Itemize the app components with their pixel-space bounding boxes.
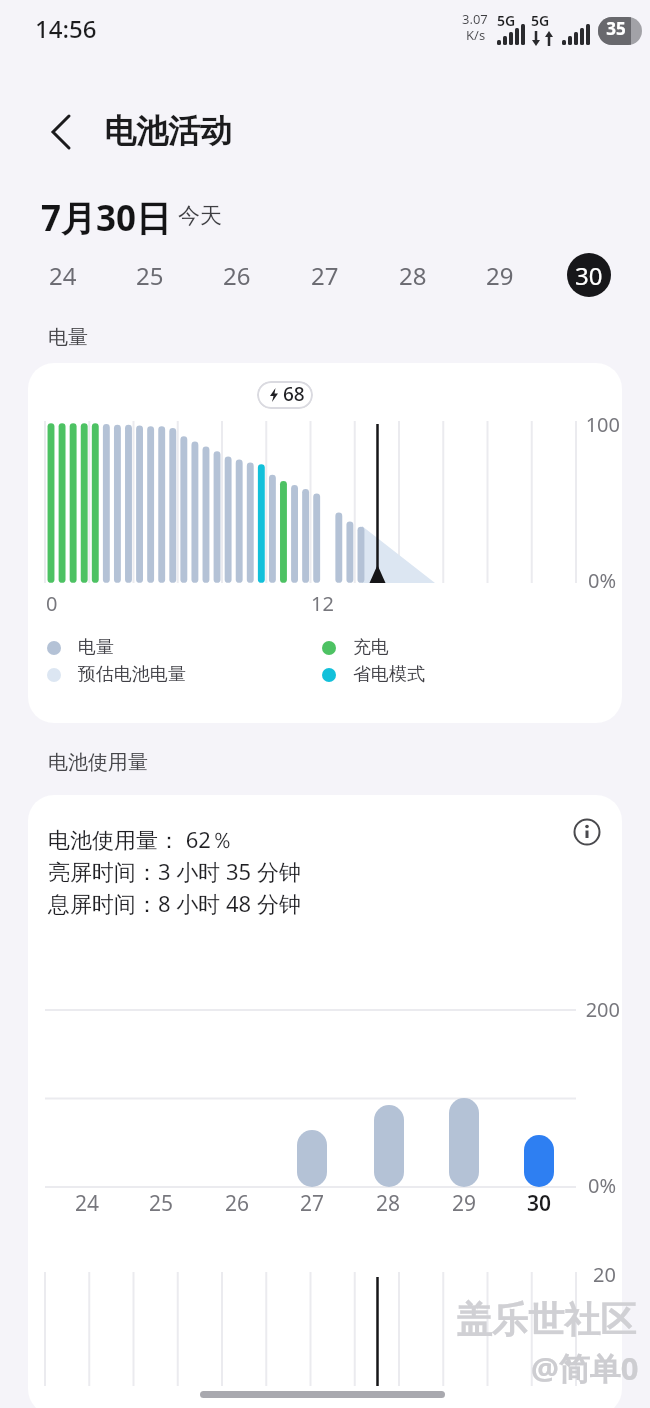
staticText: 24 (49, 259, 77, 292)
staticText: 3.07 (462, 10, 488, 28)
staticText: 28 (399, 259, 427, 292)
staticText: 25 (141, 1189, 181, 1218)
staticText: 14:56 (35, 12, 97, 45)
button[interactable]: 30 (567, 253, 611, 297)
button[interactable]: 29 (476, 253, 524, 297)
staticText: 电量 (48, 325, 88, 350)
staticText: 29 (486, 259, 514, 292)
staticText: 5G (531, 11, 550, 30)
staticText: 电池活动 (104, 111, 232, 151)
button[interactable]: 28 (389, 253, 437, 297)
button[interactable] (38, 108, 86, 156)
staticText: 26 (223, 259, 251, 292)
staticText: 27 (311, 259, 339, 292)
staticText: 亮屏时间：3 小时 35 分钟 (48, 856, 301, 886)
staticText: 0 (46, 590, 58, 617)
staticText: 电池使用量 (48, 750, 148, 775)
staticText: 息屏时间：8 小时 48 分钟 (48, 888, 301, 918)
staticText: 30 (519, 1189, 559, 1218)
staticText: 25 (136, 259, 164, 292)
staticText: 12 (311, 590, 334, 617)
button[interactable] (573, 818, 601, 846)
staticText: 24 (67, 1189, 107, 1218)
staticText: 0% (556, 1172, 616, 1199)
staticText: 电池使用量： 62％ (48, 824, 233, 854)
staticText: 7月30日 (41, 194, 172, 242)
staticText: 26 (217, 1189, 257, 1218)
staticText: 20 (556, 1261, 616, 1288)
staticText: 今天 (178, 202, 222, 230)
staticText: 28 (368, 1189, 408, 1218)
staticText: 盖乐世社区 (456, 1297, 636, 1342)
staticText: 30 (575, 259, 603, 292)
button[interactable]: 27 (301, 253, 349, 297)
button[interactable]: 25 (126, 253, 174, 297)
staticText: 5G (497, 11, 516, 30)
staticText: 35 (598, 17, 634, 40)
staticText: 0% (556, 567, 616, 594)
staticText: 27 (292, 1189, 332, 1218)
staticText: 29 (444, 1189, 484, 1218)
button[interactable]: 26 (213, 253, 261, 297)
staticText: 电量 (78, 636, 114, 659)
staticText: 100 (560, 411, 620, 438)
staticText: 省电模式 (353, 663, 425, 686)
staticText: 预估电池电量 (78, 663, 186, 686)
staticText: @简单0 (531, 1347, 639, 1389)
staticText: K/s (466, 26, 486, 44)
button[interactable]: 24 (39, 253, 87, 297)
staticText: 68 (283, 381, 305, 407)
staticText: 充电 (353, 636, 389, 659)
staticText: 200 (560, 996, 620, 1023)
